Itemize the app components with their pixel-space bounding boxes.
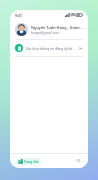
button[interactable]: Nguyễn Tuấn Hùng - Giám đốc xyxy=(10,20,88,39)
staticText: 9:41 xyxy=(15,13,23,18)
staticText: hungnt@gmail.com xyxy=(31,31,59,35)
staticText: Xác thực thông tin đăng ký tài khoản VTC xyxy=(26,46,75,50)
staticText: Trang chủ xyxy=(24,160,39,164)
button[interactable]: Menu xyxy=(74,157,82,165)
button[interactable]: Trang chủ xyxy=(16,158,41,165)
button[interactable]: More options xyxy=(77,45,83,51)
button[interactable]: Xác thực thông tin đăng ký tài khoản VTC xyxy=(10,40,88,56)
staticText: Nguyễn Tuấn Hùng - Giám đốc xyxy=(31,25,83,30)
